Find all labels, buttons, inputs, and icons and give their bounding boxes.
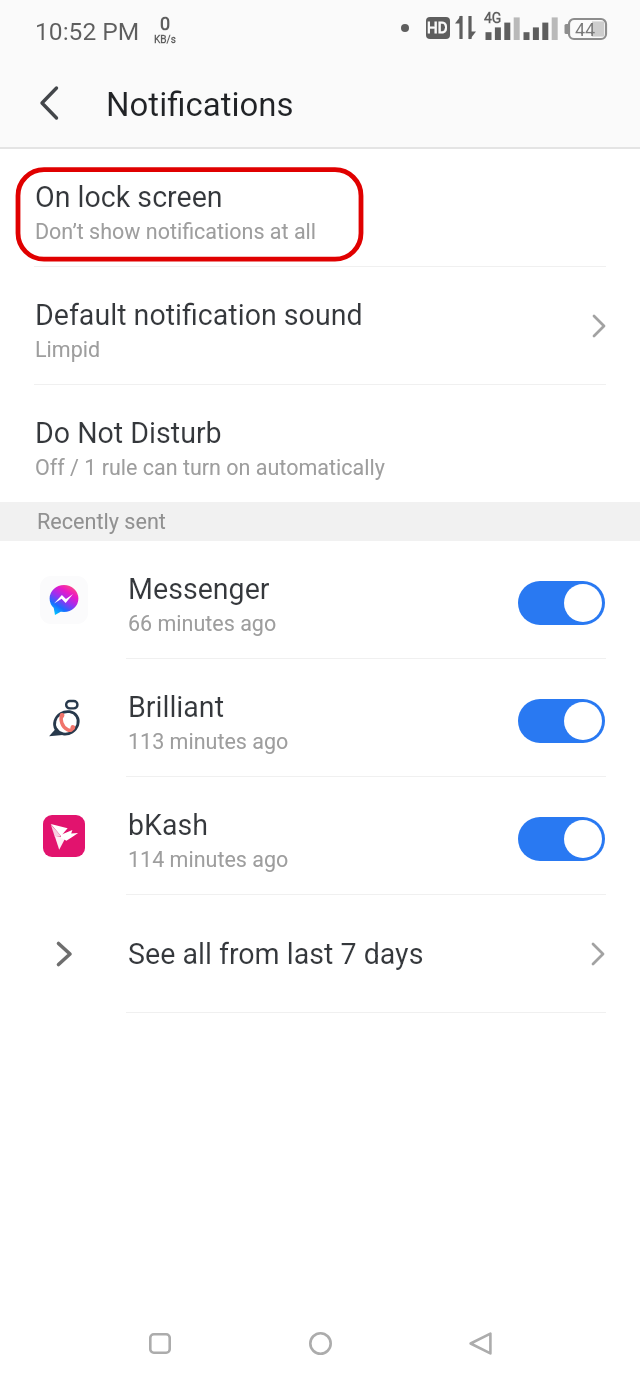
button[interactable]: Brilliant notifications toggle bbox=[518, 699, 605, 743]
staticText: On lock screen bbox=[35, 180, 223, 214]
staticText: bKash bbox=[128, 808, 209, 842]
button[interactable]: Messenger notifications toggle bbox=[518, 581, 605, 625]
staticText: KB/s bbox=[154, 34, 176, 46]
staticText: Brilliant bbox=[128, 690, 225, 724]
staticText: See all from last 7 days bbox=[128, 937, 424, 971]
button[interactable]: Messenger bbox=[0, 541, 640, 658]
staticText: 113 minutes ago bbox=[128, 729, 289, 754]
button[interactable]: Do Not Disturb bbox=[0, 385, 640, 502]
button[interactable]: Brilliant bbox=[0, 659, 640, 776]
staticText: Recently sent bbox=[37, 509, 166, 534]
button[interactable]: Open Default notification sound bbox=[560, 267, 640, 384]
staticText: 44 bbox=[575, 19, 596, 40]
staticText: 10:52 PM bbox=[35, 17, 140, 46]
staticText: Do Not Disturb bbox=[35, 416, 222, 450]
staticText: Limpid bbox=[35, 337, 101, 362]
staticText: Messenger bbox=[128, 572, 270, 606]
button[interactable]: bKash notifications toggle bbox=[518, 817, 605, 861]
staticText: Don’t show notifications at all bbox=[35, 219, 317, 244]
button[interactable]: Recent apps bbox=[110, 1297, 210, 1386]
staticText: 4G bbox=[484, 10, 502, 26]
staticText: Default notification sound bbox=[35, 298, 363, 332]
button[interactable]: Default notification sound bbox=[0, 267, 640, 384]
staticText: 114 minutes ago bbox=[128, 847, 289, 872]
button[interactable]: bKash bbox=[0, 777, 640, 894]
staticText: Notifications bbox=[106, 85, 294, 124]
button[interactable]: See all from last 7 days bbox=[0, 895, 640, 1012]
staticText: Off / 1 rule can turn on automatically bbox=[35, 455, 385, 480]
staticText: 0 bbox=[160, 13, 171, 34]
button[interactable]: On lock screen bbox=[0, 149, 640, 266]
staticText: 66 minutes ago bbox=[128, 611, 277, 636]
button[interactable]: Home bbox=[270, 1297, 370, 1386]
staticText: HD bbox=[427, 19, 448, 37]
button[interactable]: Back bbox=[0, 62, 86, 147]
button[interactable]: Back bbox=[430, 1297, 530, 1386]
